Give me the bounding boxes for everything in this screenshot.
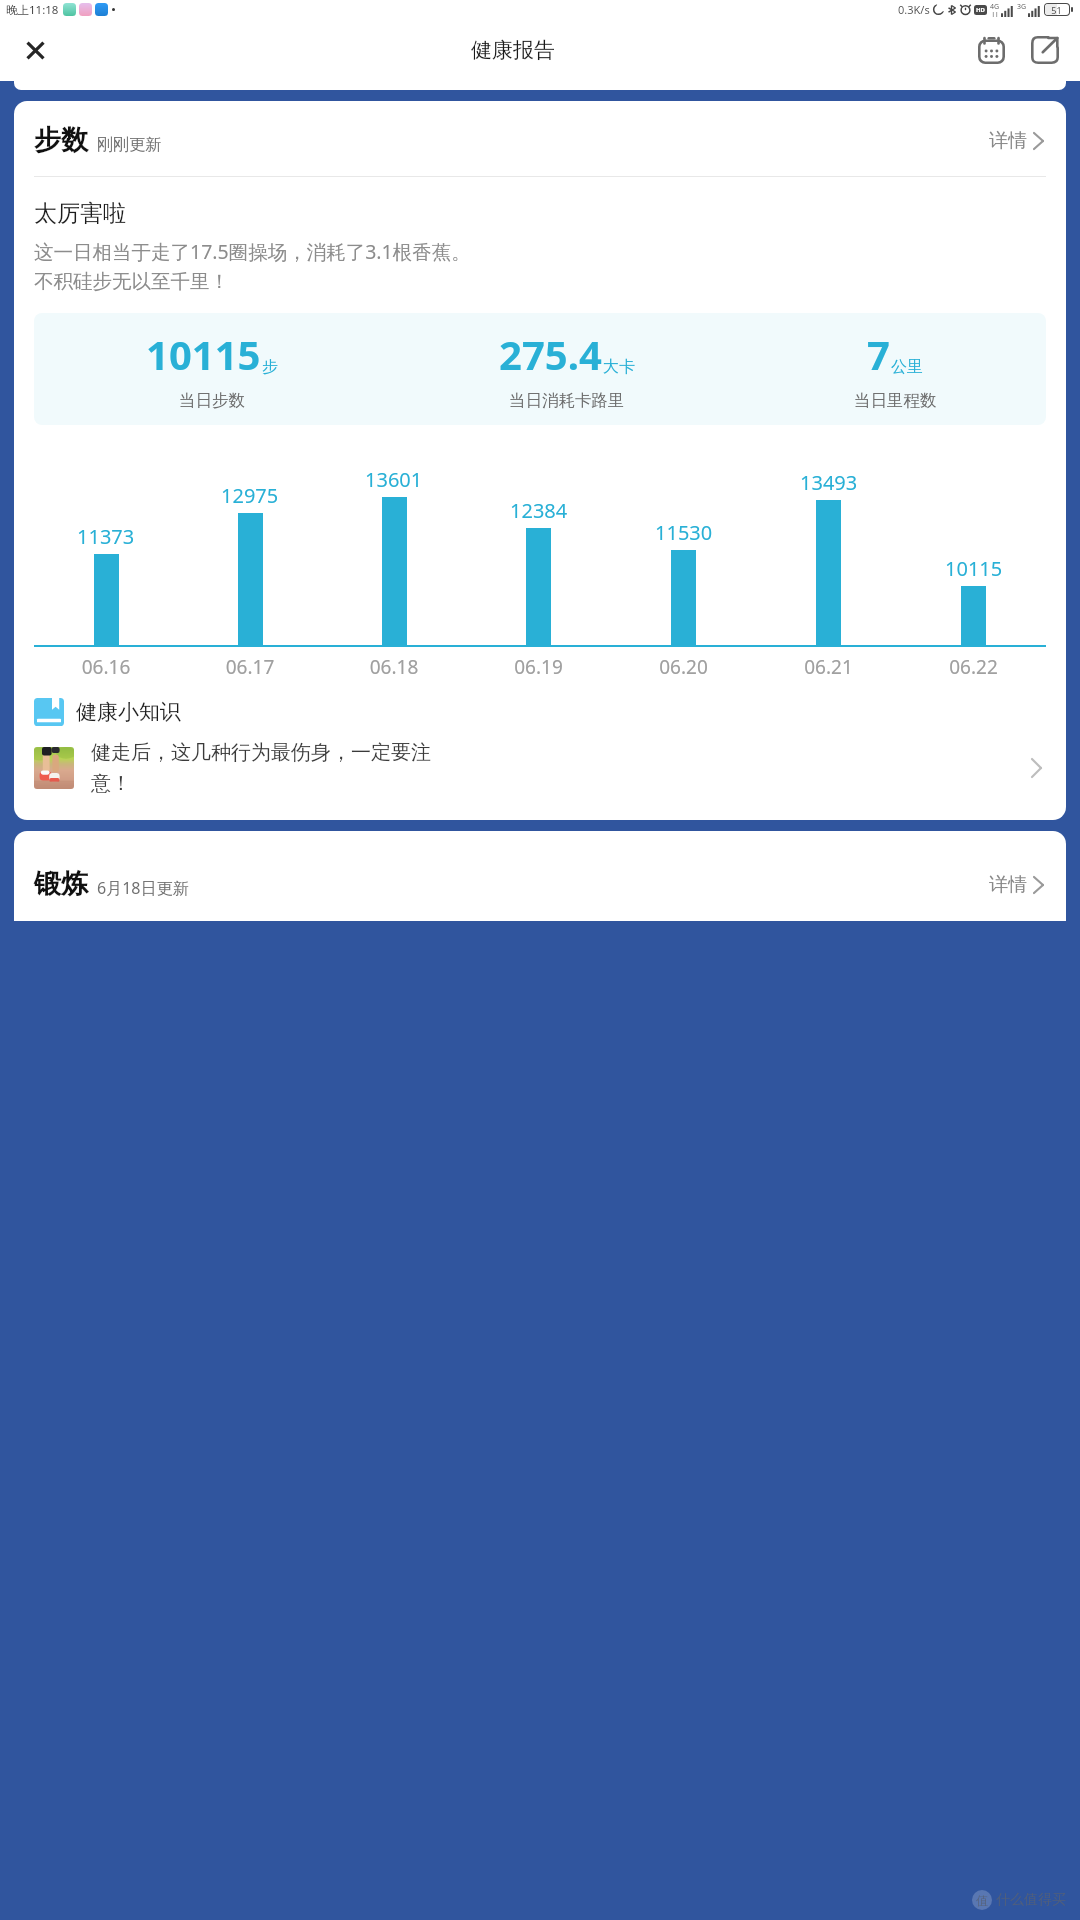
- staticText: 刚刚更新: [97, 135, 161, 155]
- staticText: 06.21: [756, 654, 901, 680]
- button[interactable]: 详情: [987, 125, 1046, 157]
- staticText: 06.18: [322, 654, 466, 680]
- staticText: 晚上11:18: [6, 2, 59, 18]
- button[interactable]: Share: [1024, 29, 1066, 71]
- staticText: 13601: [365, 466, 423, 493]
- staticText: 步: [262, 357, 278, 377]
- staticText: 这一日相当于走了17.5圈操场，消耗了3.1根香蕉。 不积硅步无以至千里！: [34, 238, 471, 293]
- staticText: 公里: [891, 357, 923, 377]
- staticText: 当日消耗卡路里: [509, 390, 625, 411]
- button[interactable]: 健走后，这几种行为最伤身，一定要注 意！: [34, 740, 1046, 796]
- staticText: 步数: [34, 123, 88, 157]
- staticText: 太厉害啦: [34, 199, 126, 228]
- staticText: 12384: [510, 497, 568, 524]
- staticText: 健康小知识: [76, 699, 181, 725]
- staticText: 什么值得买: [996, 1891, 1066, 1909]
- button[interactable]: Close: [14, 29, 56, 71]
- staticText: 当日步数: [179, 390, 245, 411]
- staticText: 大卡: [603, 357, 635, 377]
- staticText: 详情: [989, 129, 1027, 153]
- staticText: 11530: [655, 519, 713, 546]
- staticText: 详情: [989, 873, 1027, 897]
- staticText: 当日里程数: [854, 390, 937, 411]
- staticText: 健康报告: [471, 37, 555, 63]
- staticText: 11373: [77, 523, 135, 550]
- staticText: 0.3K/s: [898, 2, 930, 17]
- staticText: 10115: [945, 555, 1003, 582]
- staticText: 51: [1045, 4, 1068, 15]
- staticText: 13493: [800, 469, 858, 496]
- staticText: 锻炼: [34, 867, 88, 901]
- button[interactable]: 详情: [987, 869, 1046, 901]
- staticText: 06.17: [178, 654, 322, 680]
- staticText: 12975: [221, 482, 279, 509]
- staticText: 06.20: [611, 654, 756, 680]
- staticText: 06.22: [901, 654, 1046, 680]
- staticText: 值: [976, 1893, 988, 1908]
- staticText: 275.4: [499, 327, 602, 381]
- staticText: 06.19: [466, 654, 611, 680]
- staticText: HD: [976, 6, 985, 14]
- staticText: 4G: [990, 2, 1000, 12]
- staticText: 7: [867, 327, 890, 381]
- staticText: 3G: [1017, 2, 1027, 12]
- button[interactable]: Calendar: [970, 29, 1012, 71]
- staticText: 06.16: [34, 654, 178, 680]
- staticText: 6月18日更新: [97, 877, 189, 899]
- staticText: 健走后，这几种行为最伤身，一定要注 意！: [91, 740, 1021, 796]
- staticText: 10115: [146, 327, 261, 381]
